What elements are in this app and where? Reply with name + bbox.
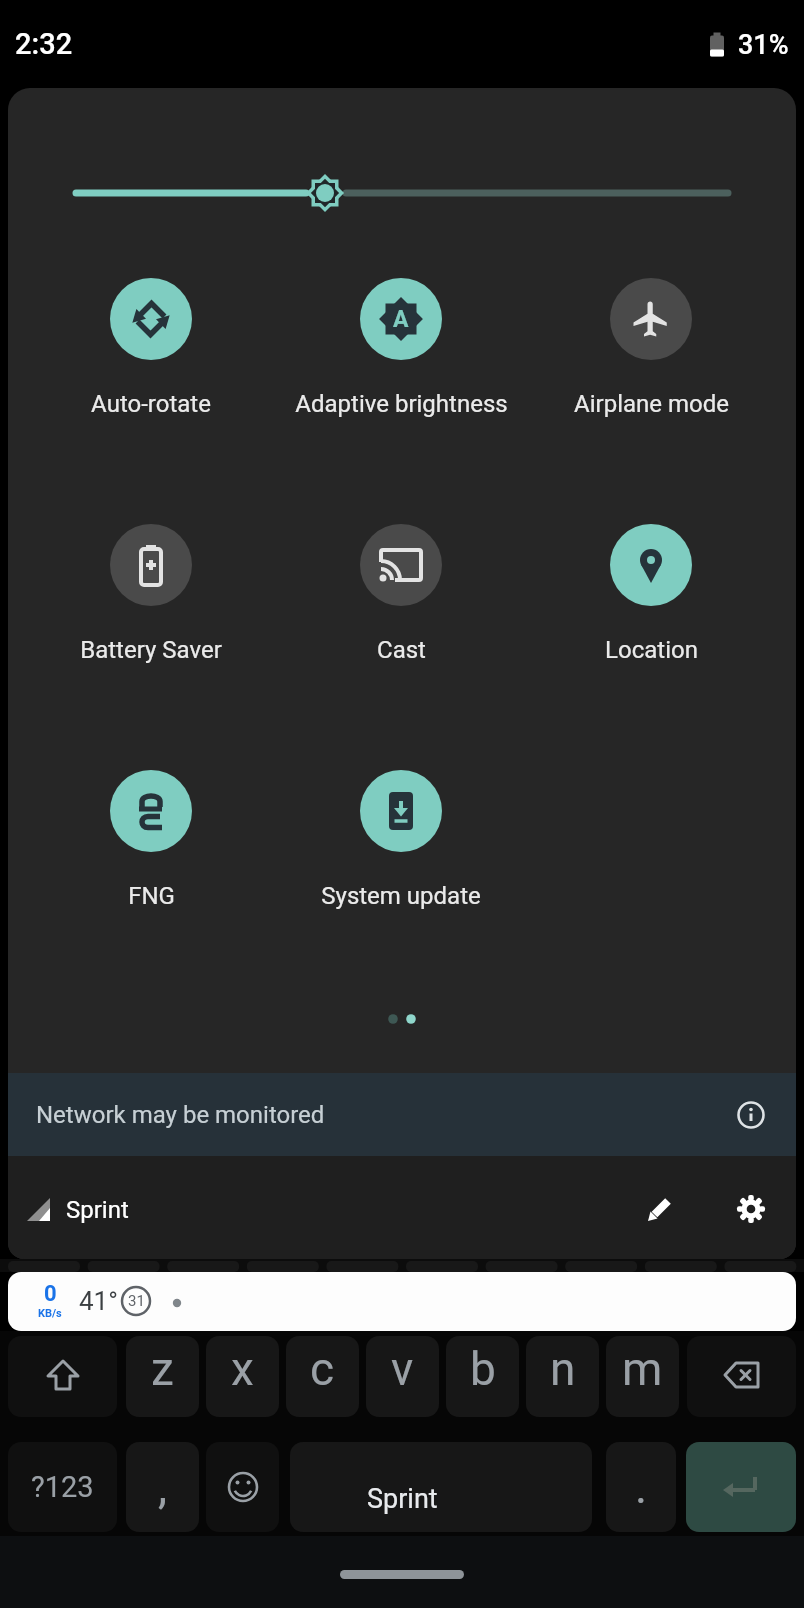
button[interactable]: b bbox=[446, 1336, 519, 1417]
staticText: Network may be monitored bbox=[36, 1101, 325, 1129]
button[interactable]: ?123 bbox=[8, 1442, 117, 1532]
staticText: FNG bbox=[128, 882, 175, 910]
button[interactable] bbox=[110, 770, 192, 852]
button[interactable] bbox=[206, 1442, 279, 1532]
staticText: z bbox=[151, 1342, 174, 1396]
button[interactable]: c bbox=[286, 1336, 359, 1417]
staticText: 41° bbox=[79, 1286, 118, 1316]
button[interactable] bbox=[645, 1194, 675, 1224]
staticText: c bbox=[310, 1342, 335, 1396]
staticText: v bbox=[391, 1342, 414, 1396]
button[interactable]: m bbox=[606, 1336, 679, 1417]
button[interactable]: Network may be monitored bbox=[8, 1073, 796, 1156]
staticText: Cast bbox=[377, 636, 426, 664]
staticText: x bbox=[231, 1342, 254, 1396]
button[interactable]: . bbox=[606, 1442, 676, 1532]
staticText: ?123 bbox=[31, 1470, 94, 1504]
button[interactable]: x bbox=[206, 1336, 279, 1417]
staticText: Adaptive brightness bbox=[295, 390, 508, 418]
staticText: n bbox=[550, 1342, 576, 1396]
button[interactable] bbox=[687, 1336, 796, 1417]
staticText: KB/s bbox=[38, 1307, 62, 1320]
button[interactable] bbox=[736, 1194, 766, 1224]
button[interactable] bbox=[360, 770, 442, 852]
button[interactable]: 0 bbox=[8, 1272, 796, 1331]
button[interactable] bbox=[610, 524, 692, 606]
button[interactable] bbox=[68, 168, 736, 218]
button[interactable]: , bbox=[126, 1442, 199, 1532]
staticText: Battery Saver bbox=[80, 636, 222, 664]
button[interactable]: z bbox=[126, 1336, 199, 1417]
staticText: 0 bbox=[44, 1281, 57, 1307]
staticText: b bbox=[470, 1342, 496, 1396]
button[interactable] bbox=[360, 524, 442, 606]
staticText: Sprint bbox=[66, 1196, 129, 1224]
button[interactable] bbox=[8, 1336, 117, 1417]
staticText: , bbox=[158, 1460, 168, 1514]
button[interactable]: v bbox=[366, 1336, 439, 1417]
button[interactable] bbox=[686, 1442, 796, 1532]
button[interactable]: n bbox=[526, 1336, 599, 1417]
button[interactable] bbox=[110, 524, 192, 606]
staticText: A bbox=[393, 306, 409, 333]
button[interactable] bbox=[610, 278, 692, 360]
staticText: Auto-rotate bbox=[91, 390, 211, 418]
staticText: 31 bbox=[128, 1292, 145, 1310]
staticText: Airplane mode bbox=[574, 390, 729, 418]
staticText: System update bbox=[321, 882, 481, 910]
button[interactable] bbox=[290, 1442, 592, 1532]
staticText: 2:32 bbox=[15, 27, 73, 61]
staticText: . bbox=[635, 1460, 648, 1514]
staticText: Sprint bbox=[367, 1483, 438, 1515]
button[interactable] bbox=[110, 278, 192, 360]
staticText: 31% bbox=[738, 29, 789, 61]
button[interactable]: A bbox=[360, 278, 442, 360]
staticText: m bbox=[622, 1342, 663, 1396]
staticText: Location bbox=[605, 636, 698, 664]
